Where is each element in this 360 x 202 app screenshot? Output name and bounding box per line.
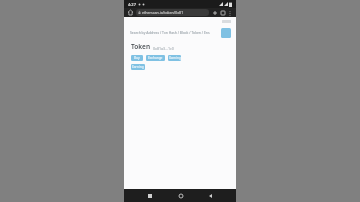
button[interactable]: Search [221,28,231,38]
button[interactable]: etherscan.io/token/0x81 [136,9,209,16]
staticText: Search by Address / Txn Hash / Block / T… [130,30,210,35]
button[interactable]: Buy [131,55,143,61]
button[interactable]: More options [227,10,233,16]
button[interactable]: Recent apps [144,190,155,201]
staticText: Exchange [148,56,163,60]
button[interactable]: New tab [211,9,218,16]
button[interactable]: Switch tabs [219,9,226,16]
button[interactable]: Back [205,190,216,201]
staticText: Buy [134,56,140,60]
button[interactable]: Earning [131,64,145,70]
staticText: 0x81a3...1c0 [153,46,175,51]
button[interactable]: Home [127,9,134,16]
staticText: Earning [132,65,144,69]
staticText: 4:27 [128,2,136,7]
button[interactable]: Exchange [146,55,165,61]
button[interactable]: Gaming [168,55,181,61]
button[interactable]: Search by Address / Txn Hash / Block / T… [130,30,219,35]
staticText: Token [131,42,151,51]
button[interactable]: Home [175,190,186,201]
staticText: etherscan.io/token/0x81 [142,10,184,15]
staticText: Gaming [169,56,181,60]
